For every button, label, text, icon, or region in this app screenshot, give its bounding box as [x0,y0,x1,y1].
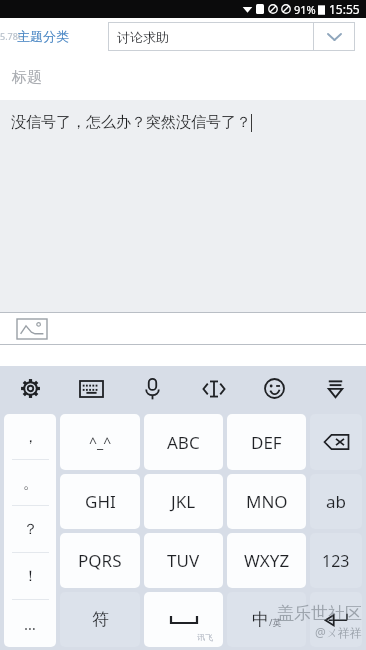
staticText: 91% [294,2,316,17]
staticText: WXYZ [244,549,290,572]
staticText: PQRS [78,549,122,572]
staticText: 123 [322,550,350,572]
button[interactable]: … [4,600,56,647]
staticText: 标题 [12,68,42,87]
staticText: DEF [251,431,282,454]
button[interactable]: 标题 [0,54,366,100]
staticText: 讯飞 [197,632,213,642]
staticText: 15:55 [329,1,360,17]
button[interactable]: 符 [60,592,140,647]
button[interactable]: ， [4,414,56,460]
staticText: 主题分类 [17,28,69,44]
button[interactable]: ？ [4,506,56,553]
staticText: ！ [23,567,38,586]
staticText: 中 [252,609,269,630]
staticText: 符 [92,609,109,630]
button[interactable]: PQRS [60,533,140,588]
button[interactable]: ABC [144,414,223,470]
staticText: … [24,614,36,634]
button[interactable]: 123 [310,533,362,588]
staticText: 5.78G [0,30,25,42]
button[interactable]: Emoji [244,366,305,411]
button[interactable]: ab [310,474,362,529]
button[interactable]: ！ [4,553,56,600]
button[interactable]: Insert image [17,319,47,339]
button[interactable]: Hide keyboard [305,366,366,411]
staticText: JKL [171,490,196,513]
button[interactable]: Keyboard layout [61,366,122,411]
button[interactable]: DEF [227,414,306,470]
button[interactable]: Text editing [183,366,244,411]
staticText: ， [23,428,38,447]
staticText: ABC [167,431,200,454]
button[interactable]: Backspace [310,414,362,470]
staticText: /英 [269,616,282,628]
staticText: GHI [85,490,116,513]
button[interactable]: 中 [227,592,306,647]
staticText: 讨论求助 [117,29,169,45]
button[interactable]: 主题分类 [17,28,69,44]
staticText: ^_^ [89,433,112,452]
button[interactable]: 。 [4,460,56,506]
button[interactable]: Voice input [122,366,183,411]
button[interactable]: TUV [144,533,223,588]
button[interactable]: WXYZ [227,533,306,588]
button[interactable]: 讨论求助 [108,22,355,51]
staticText: 盖乐世社区 [277,603,362,624]
button[interactable]: JKL [144,474,223,529]
staticText: @ㄨ祥祥 [315,624,362,640]
staticText: 没信号了，怎么办？突然没信号了？ [11,113,251,132]
staticText: TUV [167,549,200,572]
staticText: MNO [246,490,288,513]
button[interactable]: Enter [310,592,362,647]
button[interactable]: 没信号了，怎么办？突然没信号了？ [0,100,366,312]
staticText: ？ [23,520,38,539]
button[interactable]: MNO [227,474,306,529]
button[interactable]: Settings [0,366,61,411]
staticText: 。 [23,474,38,493]
button[interactable]: GHI [60,474,140,529]
button[interactable]: ^_^ [60,414,140,470]
button[interactable]: Space [144,592,223,647]
staticText: ab [326,490,346,513]
